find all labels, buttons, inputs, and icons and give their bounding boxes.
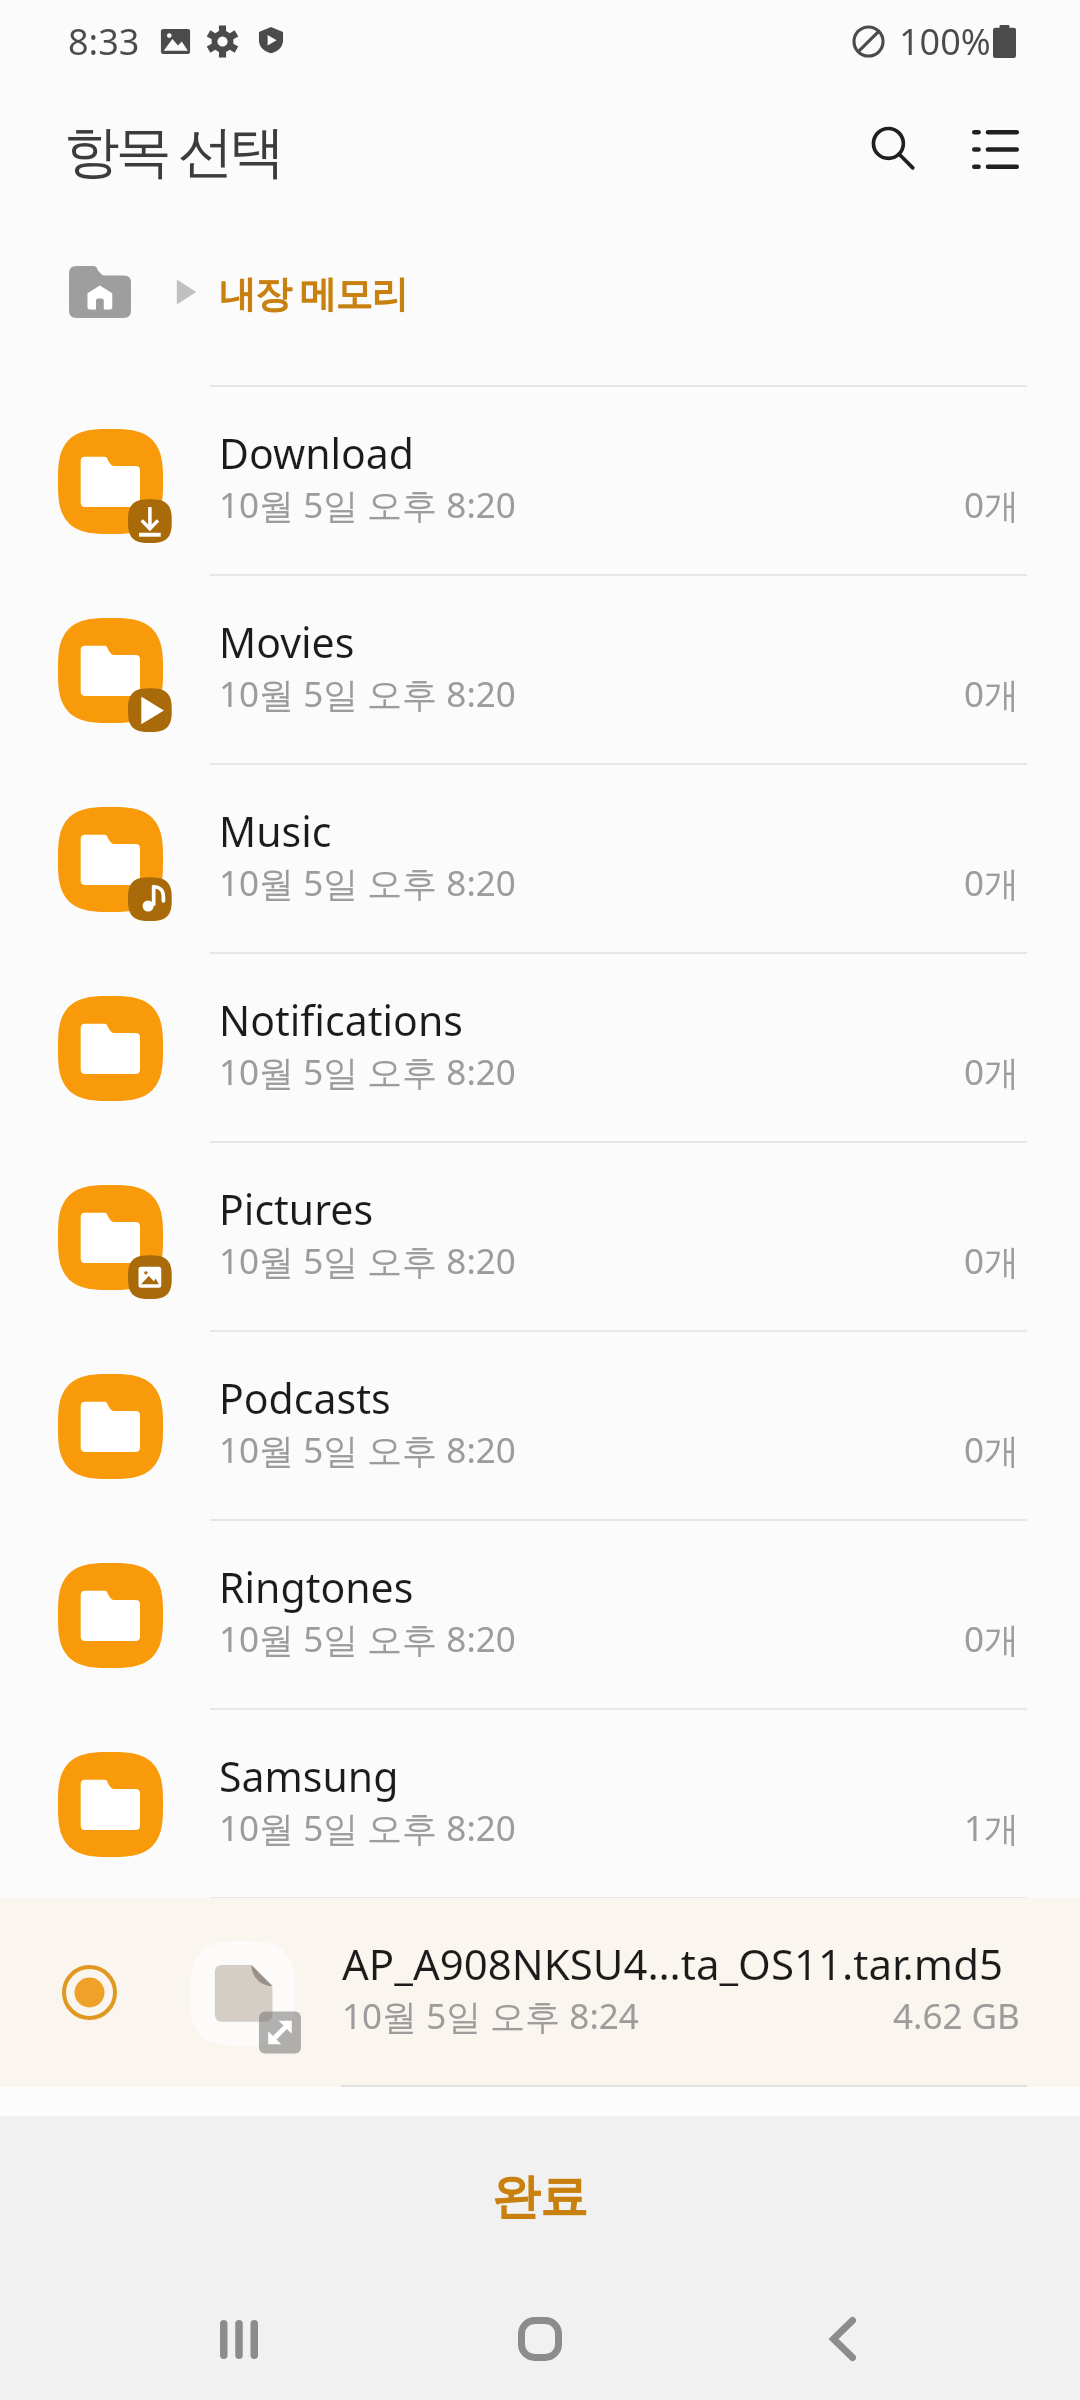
staticText: Ringtones <box>219 1559 414 1615</box>
button[interactable]: Movies <box>0 576 1080 765</box>
staticText: Movies <box>219 614 355 670</box>
staticText: 10월 5일 오후 8:20 <box>219 1804 516 1852</box>
staticText: Pictures <box>219 1181 374 1237</box>
staticText: Notifications <box>219 992 463 1048</box>
staticText: 10월 5일 오후 8:20 <box>219 670 516 718</box>
button[interactable]: Home <box>480 2279 600 2399</box>
button[interactable]: Download <box>0 387 1080 576</box>
staticText: 0개 <box>964 1237 1020 1285</box>
staticText: 10월 5일 오후 8:20 <box>219 481 516 529</box>
staticText: 내장 메모리 <box>219 267 408 318</box>
button[interactable]: Selected <box>62 1965 117 2020</box>
staticText: 10월 5일 오후 8:20 <box>219 1426 516 1474</box>
staticText: 0개 <box>964 670 1020 718</box>
staticText: Music <box>219 803 332 859</box>
button[interactable]: Recents <box>179 2279 299 2399</box>
staticText: 8:33 <box>68 17 140 66</box>
staticText: 0개 <box>964 859 1020 907</box>
staticText: 0개 <box>964 1615 1020 1663</box>
staticText: Samsung <box>219 1748 399 1804</box>
button[interactable]: Ringtones <box>0 1521 1080 1710</box>
staticText: 0개 <box>964 1048 1020 1096</box>
button[interactable]: Samsung <box>0 1710 1080 1899</box>
button[interactable]: Podcasts <box>0 1332 1080 1521</box>
staticText: 10월 5일 오후 8:24 <box>342 1992 639 2040</box>
staticText: 항목 선택 <box>64 111 282 187</box>
staticText: 10월 5일 오후 8:20 <box>219 859 516 907</box>
staticText: 10월 5일 오후 8:20 <box>219 1237 516 1285</box>
button[interactable]: Notifications <box>0 954 1080 1143</box>
button[interactable]: Pictures <box>0 1143 1080 1332</box>
staticText: AP_A908NKSU4…ta_OS11.tar.md5 <box>342 1935 1003 1992</box>
button[interactable]: Search <box>843 99 943 199</box>
button[interactable]: Back <box>783 2279 903 2399</box>
button[interactable]: 내장 메모리 <box>69 266 408 318</box>
staticText: Download <box>219 425 415 481</box>
staticText: 0개 <box>964 481 1020 529</box>
staticText: 100% <box>899 17 991 66</box>
staticText: 0개 <box>964 1426 1020 1474</box>
button[interactable]: Music <box>0 765 1080 954</box>
staticText: 10월 5일 오후 8:20 <box>219 1048 516 1096</box>
staticText: 완료 <box>492 2167 588 2227</box>
button[interactable]: 완료 <box>0 2116 1080 2278</box>
staticText: Podcasts <box>219 1370 391 1426</box>
button[interactable]: View as list <box>945 99 1045 199</box>
staticText: 1개 <box>964 1804 1020 1852</box>
staticText: 4.62 GB <box>893 1992 1020 2040</box>
staticText: 10월 5일 오후 8:20 <box>219 1615 516 1663</box>
button[interactable]: Selected <box>0 1898 1080 2087</box>
